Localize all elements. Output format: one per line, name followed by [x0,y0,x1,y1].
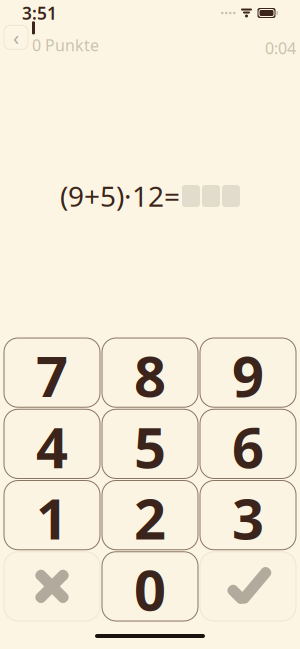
staticText: 0:04 [265,37,296,59]
button[interactable]: 4 [4,409,100,478]
staticText: 1 [36,480,68,550]
button[interactable]: 1 [4,480,100,550]
staticText: 3 [232,480,264,550]
staticText: 6 [232,409,264,478]
button[interactable]: 3 [200,480,296,550]
button[interactable]: 9 [200,338,296,407]
button[interactable]: Back [4,25,28,49]
button[interactable]: 7 [4,338,100,407]
staticText: ‹ [13,24,19,51]
staticText: 4 [36,409,68,478]
button[interactable]: Clear [4,552,100,621]
staticText: 0 [134,552,166,621]
button[interactable]: 6 [200,409,296,478]
staticText: (9+5)·12= [60,177,180,215]
button[interactable]: 2 [102,480,198,550]
staticText: 9 [232,338,264,407]
staticText: 8 [134,338,166,407]
button[interactable]: Submit [200,552,296,621]
staticText: 5 [134,409,166,478]
staticText: 3:51 [22,1,57,24]
button[interactable]: 5 [102,409,198,478]
button[interactable]: 8 [102,338,198,407]
staticText: 2 [134,480,166,550]
staticText: 7 [36,338,68,407]
staticText: 0 Punkte [32,34,99,56]
button[interactable]: 0 [102,552,198,621]
